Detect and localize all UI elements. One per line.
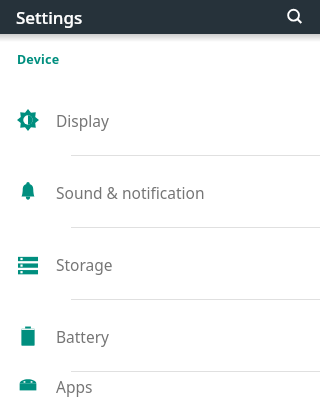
staticText: Battery xyxy=(56,326,110,347)
staticText: Storage xyxy=(56,254,113,275)
button[interactable]: Apps xyxy=(0,372,320,400)
staticText: Settings xyxy=(16,6,83,29)
staticText: Device xyxy=(17,51,60,68)
staticText: Apps xyxy=(56,376,93,397)
button[interactable]: Sound & notification xyxy=(0,156,320,228)
button[interactable]: Storage xyxy=(0,228,320,300)
staticText: Display xyxy=(56,110,109,131)
button[interactable]: Battery xyxy=(0,300,320,372)
button[interactable]: Display xyxy=(0,84,320,156)
staticText: Sound & notification xyxy=(56,182,205,203)
button[interactable]: Search xyxy=(282,4,308,30)
